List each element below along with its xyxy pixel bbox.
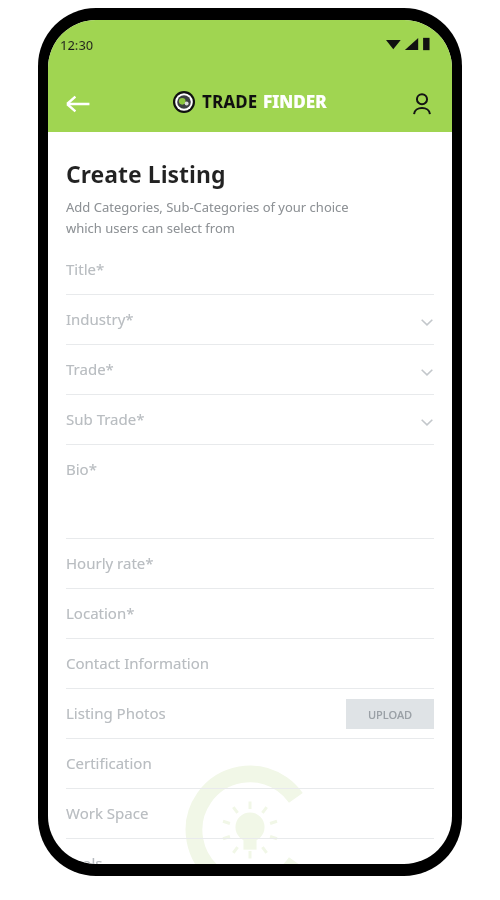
staticText: Trade* bbox=[66, 359, 114, 379]
staticText: Hourly rate* bbox=[66, 553, 154, 573]
staticText: Location* bbox=[66, 603, 135, 623]
staticText: Industry* bbox=[66, 309, 134, 329]
button[interactable]: Sub Trade* bbox=[66, 409, 434, 445]
button[interactable]: Trade* bbox=[66, 359, 434, 395]
staticText: which users can select from bbox=[66, 219, 235, 237]
button[interactable]: Profile bbox=[400, 82, 444, 126]
button[interactable]: Back bbox=[56, 82, 100, 126]
button[interactable]: UPLOAD bbox=[346, 699, 434, 729]
button[interactable]: Location* bbox=[66, 603, 434, 639]
staticText: Tools bbox=[66, 853, 103, 864]
staticText: Certification bbox=[66, 753, 152, 773]
staticText: Sub Trade* bbox=[66, 409, 145, 429]
staticText: TRADE bbox=[202, 90, 258, 113]
button[interactable]: Bio* bbox=[66, 459, 434, 539]
staticText: Contact Information bbox=[66, 653, 210, 673]
button[interactable]: Work Space bbox=[66, 803, 434, 839]
button[interactable]: Title* bbox=[66, 259, 434, 295]
staticText: Listing Photos bbox=[66, 703, 166, 723]
staticText: FINDER bbox=[263, 90, 327, 113]
staticText: 12:30 bbox=[60, 36, 94, 54]
button[interactable]: Industry* bbox=[66, 309, 434, 345]
staticText: Bio* bbox=[66, 459, 97, 479]
staticText: Work Space bbox=[66, 803, 149, 823]
staticText: Title* bbox=[66, 259, 105, 279]
button[interactable]: Certification bbox=[66, 753, 434, 789]
staticText: Create Listing bbox=[66, 158, 226, 189]
staticText: UPLOAD bbox=[368, 707, 413, 722]
button[interactable]: TRADE bbox=[173, 90, 327, 113]
button[interactable]: Tools bbox=[66, 853, 434, 864]
button[interactable]: Hourly rate* bbox=[66, 553, 434, 589]
button[interactable]: Contact Information bbox=[66, 653, 434, 689]
staticText: Add Categories, Sub-Categories of your c… bbox=[66, 198, 349, 216]
